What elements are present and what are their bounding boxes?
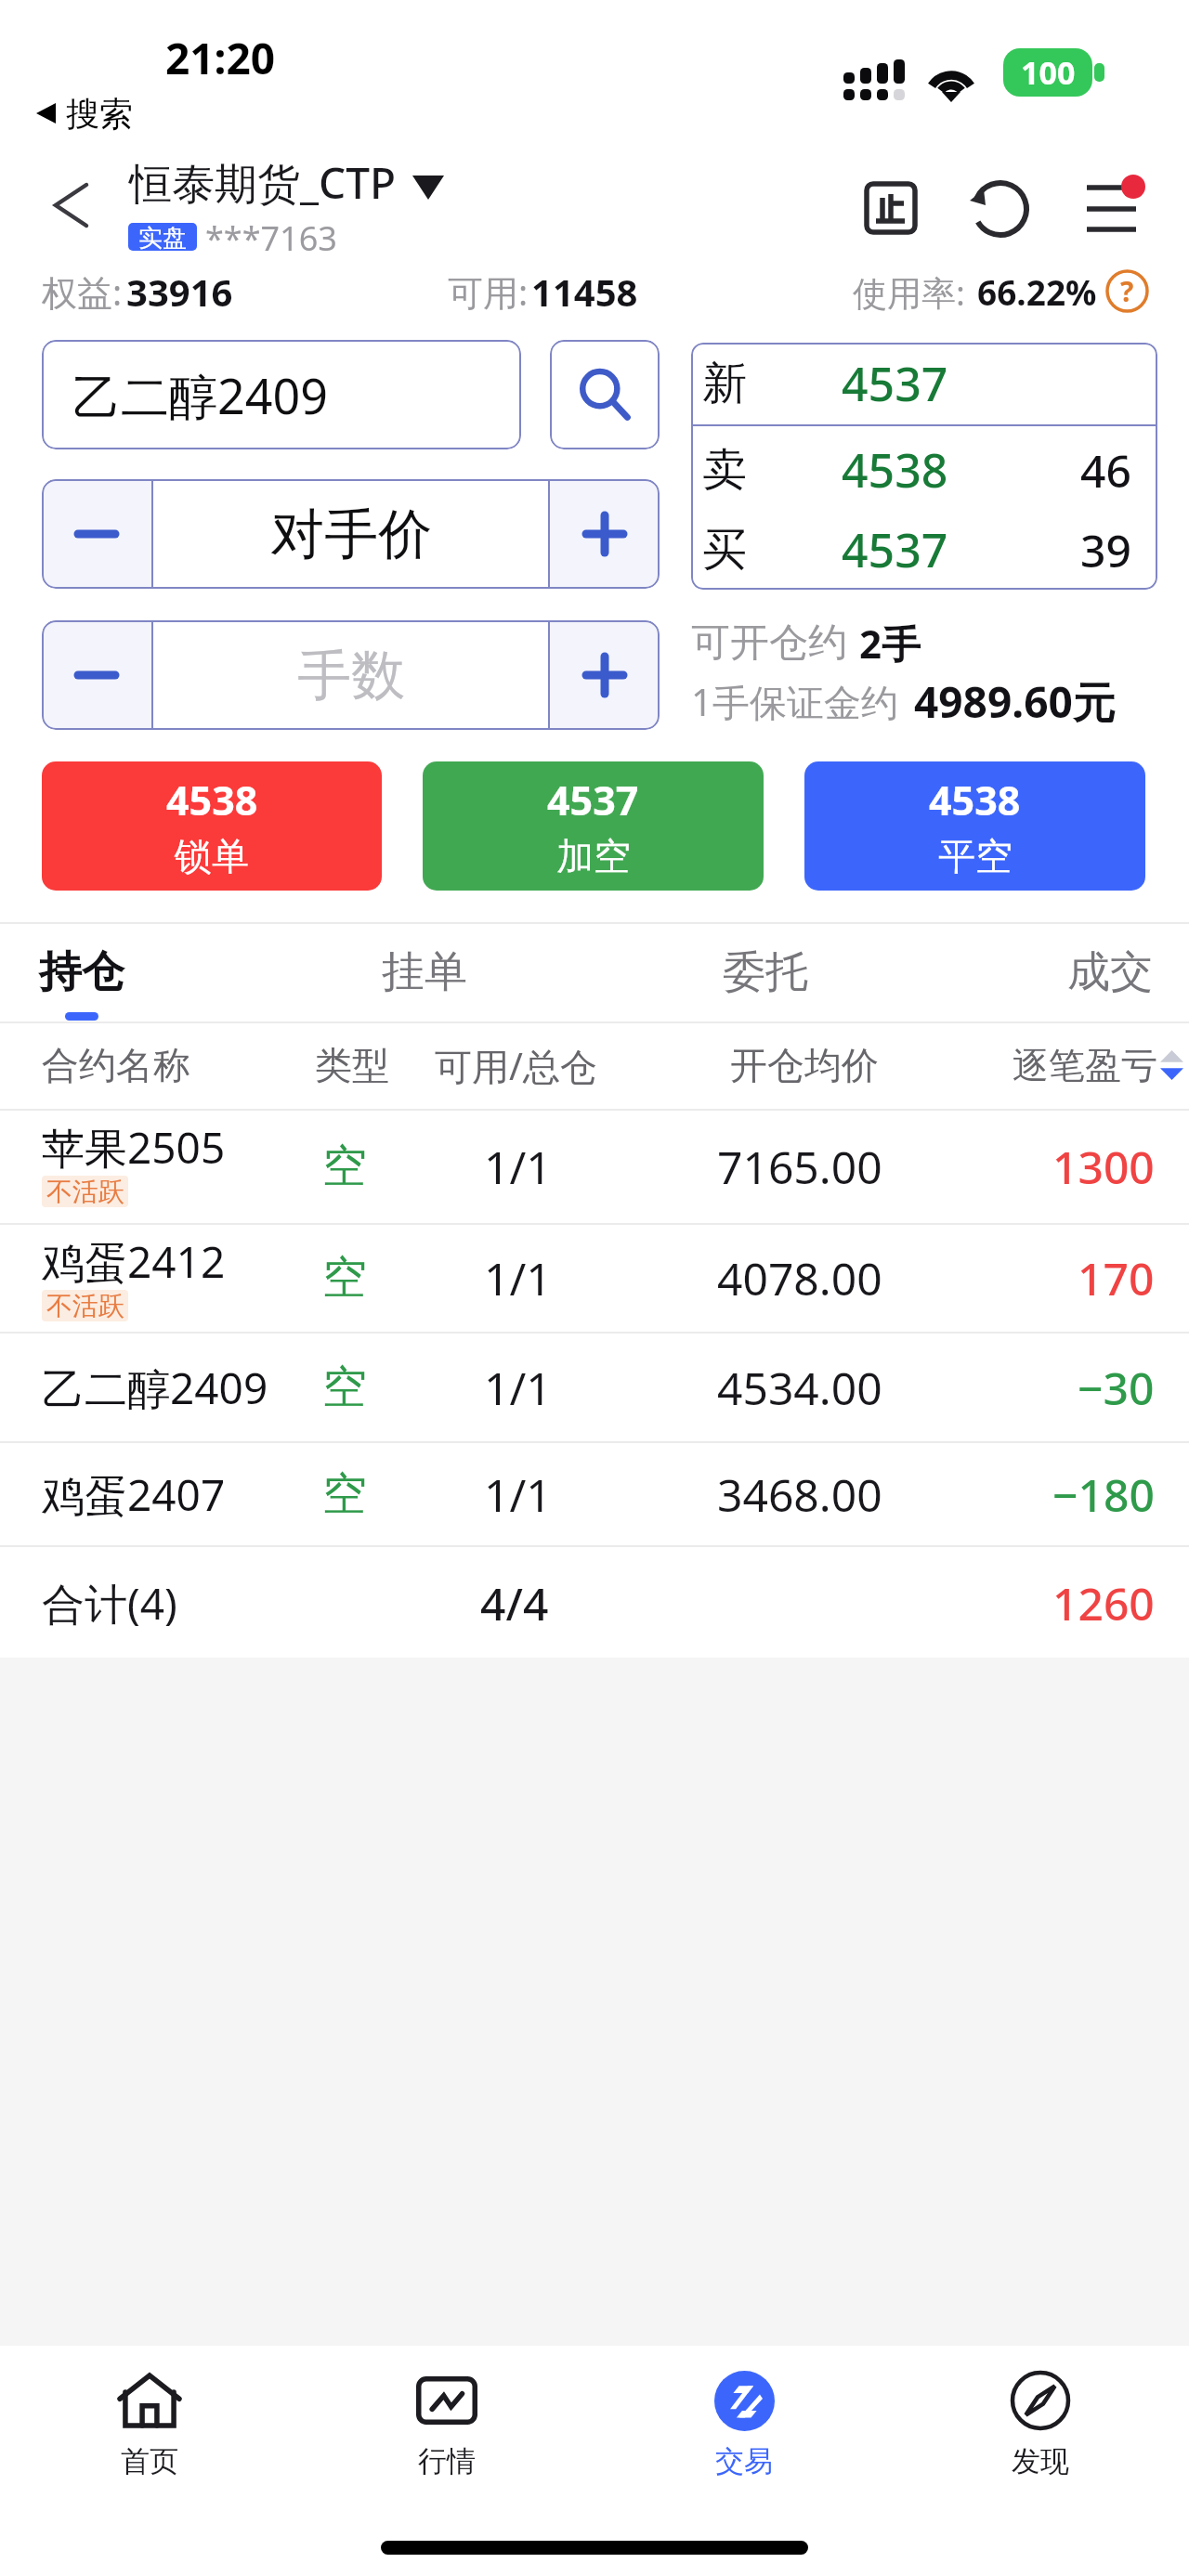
button[interactable]: Stop loss xyxy=(848,165,934,251)
staticText: 乙二醇2409 xyxy=(42,1359,268,1417)
staticText: 委托 xyxy=(723,945,808,999)
staticText: 170 xyxy=(1078,1248,1155,1308)
staticText: 开仓均价 xyxy=(730,1042,879,1088)
staticText: 33916 xyxy=(126,267,233,317)
button[interactable]: 对手价 xyxy=(153,479,548,589)
button[interactable] xyxy=(0,1443,1189,1545)
button[interactable]: 乙二醇2409 xyxy=(42,340,521,449)
staticText: 可用/总仓 xyxy=(435,1040,597,1091)
staticText: 1/1 xyxy=(484,1358,552,1418)
button[interactable]: Increase xyxy=(550,620,660,730)
button[interactable] xyxy=(0,1547,1189,1658)
staticText: 100 xyxy=(1021,51,1076,94)
staticText: 4989.60元 xyxy=(914,672,1116,731)
button[interactable]: 委托 xyxy=(626,924,905,1021)
staticText: 可用: xyxy=(448,267,529,316)
staticText: 46 xyxy=(1080,440,1131,501)
staticText: 挂单 xyxy=(382,945,467,999)
button[interactable]: Back xyxy=(30,164,113,248)
button[interactable]: 手数 xyxy=(153,620,548,730)
staticText: 1260 xyxy=(1052,1573,1155,1633)
button[interactable]: Decrease xyxy=(42,620,151,730)
button[interactable] xyxy=(128,156,453,214)
staticText: 1300 xyxy=(1052,1137,1155,1197)
staticText: 乙二醇2409 xyxy=(72,362,328,428)
staticText: 39 xyxy=(1080,520,1131,580)
staticText: 4/4 xyxy=(480,1573,549,1633)
staticText: ***7163 xyxy=(205,215,337,261)
staticText: 锁单 xyxy=(175,833,249,879)
button[interactable]: Menu xyxy=(1074,167,1157,251)
staticText: 搜索 xyxy=(66,93,133,135)
staticText: 实盘 xyxy=(138,223,187,251)
button[interactable]: Decrease xyxy=(42,479,151,589)
staticText: 加空 xyxy=(556,833,631,879)
staticText: 首页 xyxy=(121,2443,178,2479)
staticText: 逐笔盈亏 xyxy=(1013,1043,1157,1088)
staticText: 苹果2505 xyxy=(42,1118,226,1177)
button[interactable]: 4537 xyxy=(423,761,764,891)
staticText: 11458 xyxy=(531,267,638,317)
button[interactable]: Search xyxy=(550,340,660,449)
staticText: 4537 xyxy=(547,773,639,827)
staticText: 可开仓约 xyxy=(691,618,847,668)
button[interactable] xyxy=(0,1111,1189,1223)
button[interactable]: Increase xyxy=(550,479,660,589)
staticText: 合约名称 xyxy=(42,1042,190,1088)
staticText: 行情 xyxy=(418,2443,476,2479)
staticText: 权益: xyxy=(42,267,123,316)
button[interactable]: 挂单 xyxy=(285,924,564,1021)
staticText: −30 xyxy=(1078,1358,1155,1418)
staticText: 4078.00 xyxy=(717,1248,882,1308)
staticText: 空 xyxy=(322,1466,367,1522)
staticText: −180 xyxy=(1052,1464,1155,1525)
staticText: 新 xyxy=(702,356,747,411)
staticText: 1/1 xyxy=(484,1464,552,1525)
staticText: 4538 xyxy=(929,773,1021,827)
staticText: 恒泰期货_CTP xyxy=(129,153,397,212)
staticText: 4537 xyxy=(842,518,948,581)
staticText: 4534.00 xyxy=(717,1358,882,1418)
staticText: 手数 xyxy=(297,642,405,709)
staticText: 不活跃 xyxy=(46,1290,124,1321)
staticText: 空 xyxy=(322,1138,367,1194)
staticText: 不活跃 xyxy=(46,1176,124,1207)
button[interactable] xyxy=(691,343,1157,590)
button[interactable]: 行情 xyxy=(298,2348,595,2496)
button[interactable] xyxy=(0,1225,1189,1332)
staticText: 21:20 xyxy=(165,29,276,87)
staticText: 4538 xyxy=(842,438,948,501)
button[interactable]: 交易 xyxy=(595,2348,893,2496)
staticText: 平空 xyxy=(938,833,1013,879)
staticText: 1/1 xyxy=(484,1137,552,1197)
staticText: 类型 xyxy=(315,1042,389,1088)
button[interactable]: 4538 xyxy=(42,761,382,891)
button[interactable]: 首页 xyxy=(1,2348,298,2496)
button[interactable]: 发现 xyxy=(892,2348,1189,2496)
staticText: 发现 xyxy=(1012,2443,1069,2479)
staticText: 1手保证金约 xyxy=(691,676,898,727)
button[interactable]: Refresh xyxy=(958,166,1043,252)
staticText: 卖 xyxy=(702,442,747,498)
button[interactable]: 4538 xyxy=(804,761,1145,891)
staticText: 66.22% xyxy=(977,268,1097,315)
staticText: 鸡蛋2407 xyxy=(42,1465,226,1524)
button[interactable]: 成交 xyxy=(971,924,1189,1021)
staticText: 买 xyxy=(702,522,747,578)
staticText: 7165.00 xyxy=(717,1137,882,1197)
staticText: 4538 xyxy=(166,773,258,827)
button[interactable] xyxy=(0,1334,1189,1441)
staticText: 3468.00 xyxy=(717,1464,882,1525)
staticText: 成交 xyxy=(1067,945,1153,999)
staticText: 使用率: xyxy=(853,268,965,316)
staticText: 鸡蛋2412 xyxy=(42,1232,226,1291)
staticText: 4537 xyxy=(842,352,948,415)
staticText: 2手 xyxy=(859,617,921,670)
staticText: 合计(4) xyxy=(42,1574,177,1633)
staticText: 1/1 xyxy=(484,1248,552,1308)
button[interactable]: Help xyxy=(1105,269,1149,313)
button[interactable]: 持仓 xyxy=(0,924,221,1021)
staticText: 空 xyxy=(322,1360,367,1415)
staticText: 空 xyxy=(322,1250,367,1306)
staticText: 持仓 xyxy=(39,945,124,999)
